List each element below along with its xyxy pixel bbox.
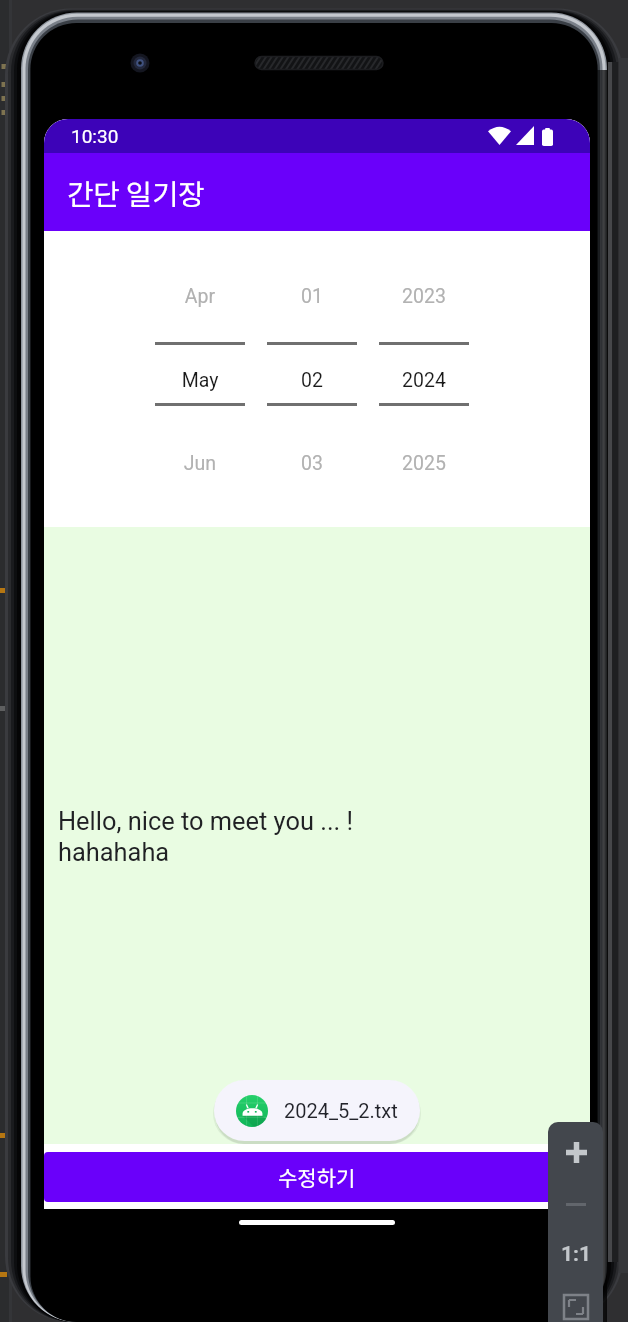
staticText: 2024_5_2.txt (284, 1099, 398, 1122)
button[interactable]: Zoom out (553, 1181, 599, 1227)
staticText: Hello, nice to meet you ... ! hahahaha (58, 806, 354, 867)
button[interactable]: 2023 (377, 231, 471, 527)
staticText: Apr (153, 285, 247, 308)
staticText: 03 (265, 452, 359, 475)
staticText: 1:1 (561, 1242, 592, 1267)
staticText: 2023 (377, 285, 471, 308)
button[interactable]: Zoom in (553, 1129, 599, 1175)
button[interactable]: 01 (265, 231, 359, 527)
staticText: 2024 (377, 369, 471, 392)
staticText: Jun (153, 452, 247, 475)
button[interactable]: 수정하기 (44, 1152, 590, 1202)
button[interactable]: Fit to window (553, 1284, 599, 1322)
button[interactable]: Apr (153, 231, 247, 527)
staticText: 2025 (377, 452, 471, 475)
button[interactable]: Actual size (553, 1231, 599, 1277)
staticText: 02 (265, 369, 359, 392)
staticText: May (153, 369, 247, 392)
staticText: 01 (265, 285, 359, 308)
button[interactable]: 2024_5_2.txt (214, 1080, 420, 1141)
staticText: 간단 일기장 (67, 172, 205, 213)
staticText: 10:30 (71, 125, 119, 147)
staticText: 수정하기 (278, 1162, 356, 1192)
